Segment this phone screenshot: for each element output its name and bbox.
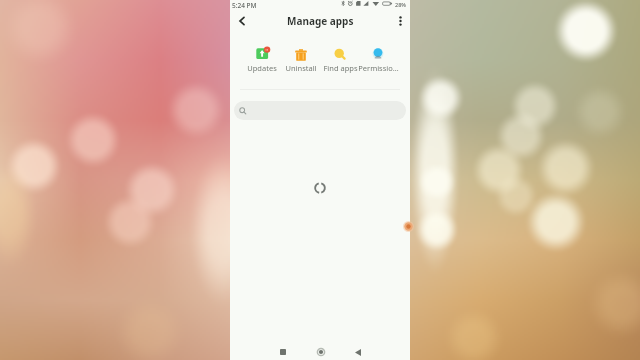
- button[interactable]: Home: [306, 341, 335, 360]
- staticText: 28%: [395, 1, 406, 8]
- button[interactable]: Search: [234, 101, 406, 120]
- button[interactable]: More options: [390, 11, 410, 31]
- staticText: 5:24 PM: [232, 1, 257, 10]
- button[interactable]: Updates: [241, 44, 283, 74]
- button[interactable]: Permissio…: [357, 44, 399, 74]
- staticText: Permissio…: [358, 63, 399, 73]
- button[interactable]: Back: [343, 341, 372, 360]
- staticText: Manage apps: [287, 14, 354, 28]
- button[interactable]: Fast scroll: [403, 221, 414, 232]
- staticText: Find apps: [323, 63, 358, 73]
- button[interactable]: Find apps: [319, 44, 361, 74]
- button[interactable]: Recents: [268, 341, 297, 360]
- button[interactable]: Uninstall: [280, 44, 322, 74]
- button[interactable]: Back: [230, 9, 254, 33]
- staticText: Uninstall: [285, 63, 317, 73]
- staticText: Updates: [247, 63, 277, 73]
